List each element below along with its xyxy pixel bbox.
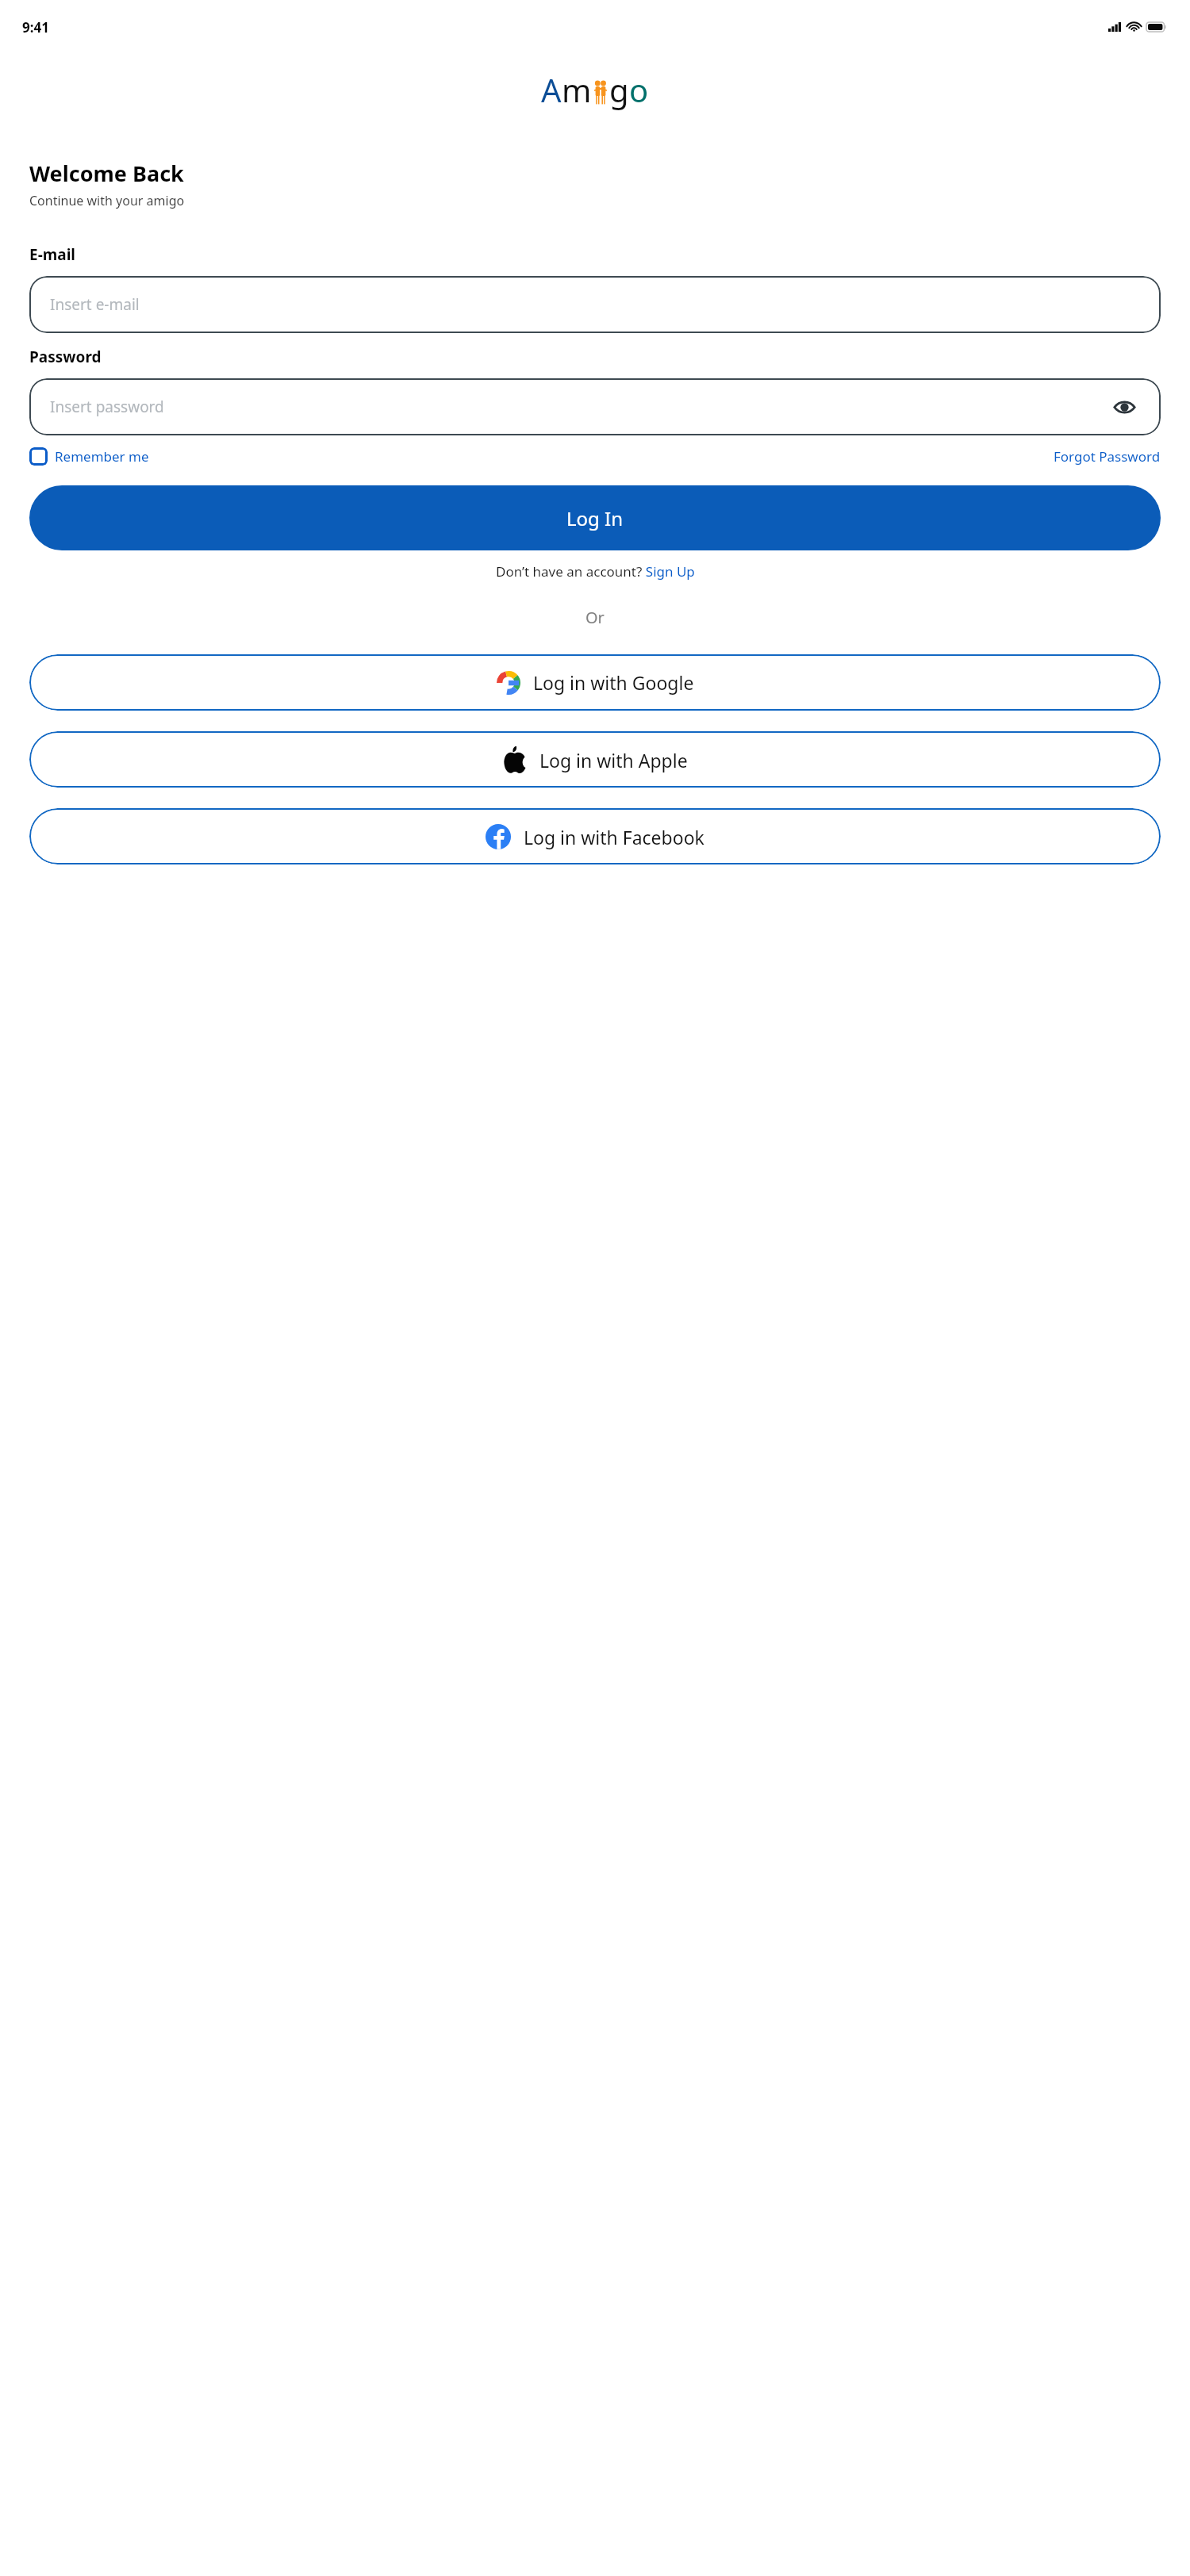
staticText: Log in with Facebook	[524, 825, 704, 849]
staticText: o	[629, 68, 649, 111]
staticText: Don’t have an account? Sign Up	[496, 562, 695, 581]
staticText: E-mail	[29, 244, 75, 265]
staticText: 9:41	[22, 18, 49, 36]
staticText: Forgot Password	[1054, 447, 1161, 466]
button[interactable]: Log in with Facebook	[29, 808, 1161, 864]
staticText: Insert e-mail	[50, 294, 140, 315]
staticText: Continue with your amigo	[29, 192, 185, 209]
button[interactable]: Forgot Password	[1054, 447, 1161, 466]
button[interactable]: Remember me	[29, 447, 149, 466]
staticText: A	[541, 68, 562, 111]
button[interactable]: Log in with Google	[29, 654, 1161, 711]
staticText: Welcome Back	[29, 159, 184, 188]
button[interactable]: Show password	[1108, 391, 1140, 423]
staticText: m	[562, 68, 592, 111]
staticText: Log in with Apple	[539, 748, 688, 772]
staticText: Log In	[566, 505, 624, 531]
button[interactable]: Insert e-mail	[29, 276, 1161, 333]
staticText: Password	[29, 347, 102, 367]
button[interactable]: Don’t have an account? Sign Up	[496, 562, 695, 581]
staticText: Insert password	[50, 397, 164, 417]
staticText: Or	[585, 607, 605, 628]
staticText: Remember me	[55, 447, 149, 466]
staticText: Log in with Google	[533, 670, 694, 695]
button[interactable]: Insert password	[29, 378, 1161, 435]
staticText: g	[609, 68, 629, 111]
button[interactable]: Log In	[29, 485, 1161, 550]
button[interactable]: Log in with Apple	[29, 731, 1161, 788]
